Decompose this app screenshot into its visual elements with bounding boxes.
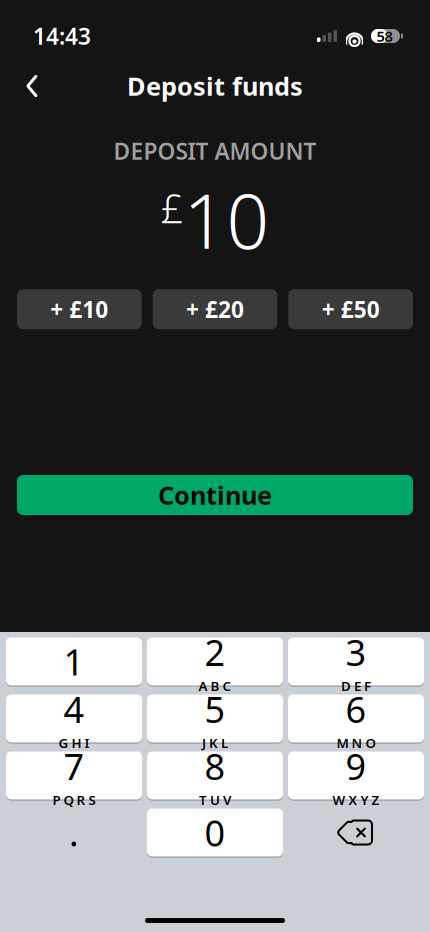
staticText: 10 xyxy=(183,170,269,269)
staticText: 6 xyxy=(345,685,366,733)
button[interactable]: 9 xyxy=(288,751,424,800)
staticText: Continue xyxy=(158,478,272,512)
staticText: + £10 xyxy=(50,294,108,324)
button[interactable]: 1 xyxy=(6,637,142,686)
staticText: 3 xyxy=(345,628,366,676)
staticText: G H I xyxy=(58,734,89,752)
staticText: 5 xyxy=(204,685,225,733)
button[interactable]: Continue xyxy=(17,475,413,515)
button[interactable]: + £10 xyxy=(17,289,142,329)
button[interactable]: 8 xyxy=(147,751,283,800)
staticText: D E F xyxy=(341,677,371,695)
button[interactable]: + £50 xyxy=(288,289,413,329)
staticText: £ xyxy=(160,181,183,234)
staticText: . xyxy=(69,809,79,856)
staticText: 9 xyxy=(345,742,366,790)
staticText: DEPOSIT AMOUNT xyxy=(113,136,316,166)
staticText: 1 xyxy=(63,638,84,685)
staticText: M N O xyxy=(336,734,375,752)
staticText: W X Y Z xyxy=(332,791,379,809)
button[interactable]: 7 xyxy=(6,751,142,800)
staticText: + £20 xyxy=(186,294,244,324)
button[interactable]: 3 xyxy=(288,637,424,686)
staticText: 4 xyxy=(63,685,84,733)
staticText: J K L xyxy=(202,734,228,752)
staticText: 7 xyxy=(63,742,84,790)
staticText: T U V xyxy=(199,791,231,809)
button[interactable]: + £20 xyxy=(153,289,277,329)
button[interactable]: Delete xyxy=(288,808,424,857)
staticText: 8 xyxy=(204,742,225,790)
staticText: Deposit funds xyxy=(127,69,303,103)
button[interactable]: 0 xyxy=(147,808,283,857)
button[interactable]: Back xyxy=(10,64,54,108)
button[interactable]: 5 xyxy=(147,694,283,743)
button[interactable]: 2 xyxy=(147,637,283,686)
staticText: + £50 xyxy=(322,294,380,324)
button[interactable]: Decimal point xyxy=(6,808,142,857)
button[interactable]: 4 xyxy=(6,694,142,743)
staticText: P Q R S xyxy=(52,791,95,809)
button[interactable]: 6 xyxy=(288,694,424,743)
staticText: A B C xyxy=(198,677,231,695)
staticText: 14:43 xyxy=(33,21,91,51)
staticText: 0 xyxy=(204,809,225,856)
staticText: 58 xyxy=(376,26,392,46)
staticText: 2 xyxy=(204,628,225,676)
